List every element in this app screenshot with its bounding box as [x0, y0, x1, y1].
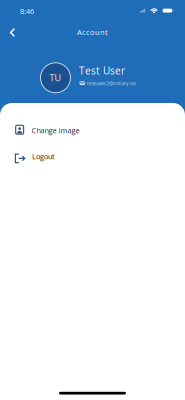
staticText: Test User — [79, 64, 125, 77]
staticText: Logout — [32, 151, 55, 161]
button[interactable]: Back — [2, 22, 22, 42]
staticText: TU — [49, 72, 61, 84]
staticText: testuser2@rotary.no — [87, 80, 136, 87]
staticText: Account — [77, 27, 108, 37]
button[interactable]: Change image — [0, 120, 185, 147]
staticText: 8:46 — [20, 6, 34, 16]
staticText: Change image — [31, 125, 79, 135]
button[interactable]: Logout — [0, 149, 185, 176]
